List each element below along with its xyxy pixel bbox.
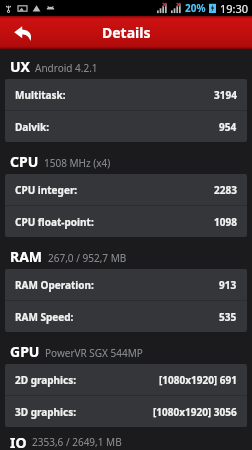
button[interactable]: Multitask: xyxy=(5,79,247,110)
staticText: PowerVR SGX 544MP xyxy=(45,346,143,360)
button[interactable]: RAM Speed: xyxy=(5,301,247,332)
staticText: 267,0 / 952,7 MB xyxy=(48,251,127,265)
staticText: RAM xyxy=(10,247,43,266)
button[interactable]: CPU integer: xyxy=(5,174,247,205)
staticText: RAM Operation: xyxy=(15,278,94,292)
staticText: 2D graphics: xyxy=(15,373,77,387)
staticText: 3194 xyxy=(214,88,237,102)
staticText: 2283 xyxy=(214,183,237,197)
staticText: Dalvik: xyxy=(15,120,49,134)
button[interactable]: CPU float-point: xyxy=(5,206,247,237)
staticText: CPU integer: xyxy=(15,183,78,197)
staticText: 535 xyxy=(219,310,237,324)
button[interactable]: 3D graphics: xyxy=(5,396,247,427)
staticText: [1080x1920] 3056 xyxy=(153,405,237,419)
staticText: 1098 xyxy=(214,215,237,229)
button[interactable]: RAM Operation: xyxy=(5,269,247,300)
staticText: CPU float-point: xyxy=(15,215,94,229)
staticText: RAM Speed: xyxy=(15,310,74,324)
button[interactable]: 2D graphics: xyxy=(5,364,247,395)
staticText: CPU xyxy=(10,152,39,171)
staticText: 2353,6 / 2649,1 MB xyxy=(32,435,122,449)
staticText: 954 xyxy=(219,120,237,134)
staticText: 19:30 xyxy=(220,1,249,16)
button[interactable]: Back xyxy=(0,16,46,49)
staticText: Details xyxy=(102,23,151,42)
staticText: 1508 MHz (x4) xyxy=(44,156,111,170)
staticText: [1080x1920] 691 xyxy=(159,373,237,387)
staticText: UX xyxy=(10,57,30,76)
staticText: Android 4.2.1 xyxy=(35,61,98,75)
staticText: 20% xyxy=(185,1,206,15)
staticText: 913 xyxy=(219,278,237,292)
staticText: 3D graphics: xyxy=(15,405,77,419)
staticText: GPU xyxy=(10,342,40,361)
button[interactable]: Dalvik: xyxy=(5,111,247,142)
staticText: Multitask: xyxy=(15,88,66,102)
staticText: IO xyxy=(10,433,27,450)
